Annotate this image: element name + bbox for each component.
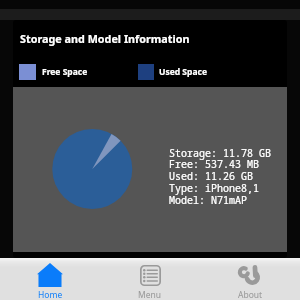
staticText: Free Space <box>42 66 88 78</box>
staticText: Used Space <box>159 66 207 78</box>
staticText: Home <box>38 289 63 300</box>
staticText: Storage: 11.78 GB Free: 537.43 MB Used: … <box>169 146 271 207</box>
other: Menu <box>138 264 163 287</box>
staticText: Menu <box>138 289 162 300</box>
button[interactable]: Menu <box>100 258 200 300</box>
button[interactable]: About <box>200 258 300 300</box>
button[interactable]: Home <box>0 258 100 300</box>
staticText: About <box>238 289 263 300</box>
staticText: Storage and Model Information <box>20 31 190 46</box>
other: About <box>238 263 260 286</box>
other: Home <box>37 263 63 287</box>
